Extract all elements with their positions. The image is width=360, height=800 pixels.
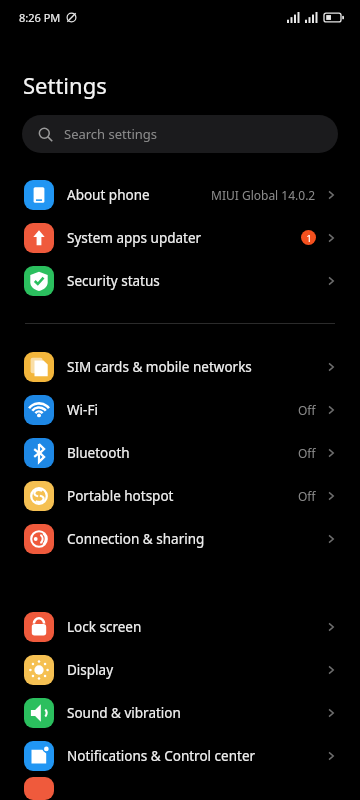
staticText: Security status xyxy=(67,272,324,290)
staticText: Off xyxy=(298,445,316,461)
button[interactable]: Wi-Fi xyxy=(0,388,360,431)
staticText: Settings xyxy=(23,70,107,100)
button[interactable]: SIM cards & mobile networks xyxy=(0,345,360,388)
button[interactable]: About phone xyxy=(0,173,360,216)
button[interactable]: Notifications & Control center xyxy=(0,734,360,777)
button[interactable]: Portable hotspot xyxy=(0,474,360,517)
staticText: Lock screen xyxy=(67,618,324,636)
button[interactable]: Bluetooth xyxy=(0,431,360,474)
button[interactable]: Display xyxy=(0,648,360,691)
staticText: Off xyxy=(298,402,316,418)
button[interactable]: More settings xyxy=(0,777,360,800)
button[interactable]: Sound & vibration xyxy=(0,691,360,734)
staticText: SIM cards & mobile networks xyxy=(67,358,324,376)
button[interactable]: Connection & sharing xyxy=(0,517,360,560)
staticText: Display xyxy=(67,661,324,679)
button[interactable]: Search settings xyxy=(22,115,338,153)
staticText: Sound & vibration xyxy=(67,704,324,722)
staticText: Off xyxy=(298,488,316,504)
staticText: Portable hotspot xyxy=(67,487,298,505)
button[interactable]: System apps updater xyxy=(0,216,360,259)
staticText: 1 xyxy=(306,232,312,244)
staticText: Notifications & Control center xyxy=(67,747,324,765)
staticText: Wi-Fi xyxy=(67,401,298,419)
staticText: Connection & sharing xyxy=(67,530,324,548)
staticText: Search settings xyxy=(64,125,158,143)
staticText: MIUI Global 14.0.2 xyxy=(211,187,316,203)
staticText: Bluetooth xyxy=(67,444,298,462)
button[interactable]: Lock screen xyxy=(0,605,360,648)
staticText: 8:26 PM xyxy=(19,10,61,25)
staticText: System apps updater xyxy=(67,229,301,247)
button[interactable]: Security status xyxy=(0,259,360,302)
staticText: About phone xyxy=(67,186,211,204)
